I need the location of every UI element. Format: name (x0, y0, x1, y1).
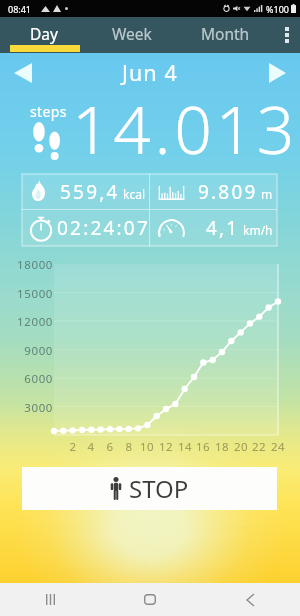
staticText: 4 (81, 439, 101, 455)
button[interactable]: Recents (0, 583, 100, 616)
staticText: 2 (63, 439, 83, 455)
staticText: 12000 (0, 314, 53, 330)
staticText: 15000 (0, 286, 53, 302)
staticText: 10 (137, 439, 157, 455)
button[interactable]: More options (274, 17, 300, 53)
staticText: 24 (268, 439, 288, 455)
staticText: 14.013 (72, 83, 299, 163)
staticText: 6000 (0, 371, 53, 387)
staticText: 08:41 (8, 3, 32, 15)
staticText: Month (201, 23, 250, 44)
button[interactable]: Day (0, 17, 88, 53)
staticText: km/h (243, 222, 273, 238)
staticText: 6 (100, 439, 120, 455)
button[interactable]: Previous day (6, 57, 40, 89)
staticText: Week (112, 23, 152, 44)
button[interactable]: Week (88, 17, 176, 53)
staticText: 16 (193, 439, 213, 455)
staticText: 18000 (0, 257, 53, 273)
staticText: 12 (156, 439, 176, 455)
staticText: 8 (119, 439, 139, 455)
staticText: Jun 4 (122, 58, 178, 87)
staticText: 02:24:07 (57, 215, 147, 241)
staticText: Day (30, 23, 58, 44)
staticText: 3000 (0, 400, 53, 416)
staticText: 559,4 (60, 179, 120, 205)
staticText: 18 (212, 439, 232, 455)
staticText: kcal (123, 186, 145, 202)
staticText: m (261, 186, 273, 202)
staticText: STOP (129, 472, 189, 505)
staticText: 4,1 (206, 215, 240, 241)
staticText: %100 (266, 3, 289, 15)
staticText: steps (30, 102, 67, 121)
button[interactable]: STOP (22, 467, 277, 510)
button[interactable]: Next day (260, 57, 294, 89)
staticText: 14 (175, 439, 195, 455)
button[interactable]: Back (200, 583, 300, 616)
staticText: 9000 (0, 343, 53, 359)
button[interactable]: Month (176, 17, 274, 53)
button[interactable]: Home (100, 583, 200, 616)
staticText: 20 (231, 439, 251, 455)
staticText: 9.809 (198, 179, 258, 205)
staticText: 22 (249, 439, 269, 455)
